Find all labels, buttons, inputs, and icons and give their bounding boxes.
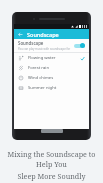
staticText: Soundscape — [18, 40, 44, 46]
button[interactable]: Wind chimes — [14, 73, 89, 83]
button[interactable]: Back — [17, 31, 24, 38]
staticText: Sleep More Soundly — [17, 171, 86, 181]
staticText: Summer night — [28, 85, 85, 91]
staticText: Soundscape — [27, 31, 59, 38]
button[interactable]: Flowing water — [14, 53, 89, 63]
button[interactable]: Soundscape — [14, 39, 89, 52]
button[interactable]: Summer night — [14, 83, 89, 93]
staticText: Flowing water — [28, 55, 80, 61]
staticText: Wind chimes — [28, 75, 85, 81]
staticText: Forest rain — [28, 65, 85, 71]
staticText: You can play music with soundscape for b… — [18, 47, 73, 51]
button[interactable]: Soundscape toggle — [73, 42, 85, 49]
button[interactable]: Forest rain — [14, 63, 89, 73]
staticText: Mixing the Soundscape to Help You — [0, 149, 103, 169]
